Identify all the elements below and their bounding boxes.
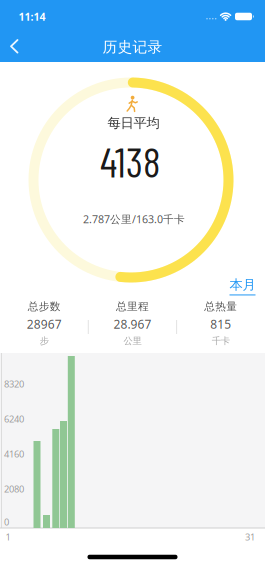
staticText: 6240 bbox=[4, 413, 24, 425]
staticText: 每日平均 bbox=[107, 115, 159, 131]
staticText: 31 bbox=[245, 531, 255, 543]
staticText: 4160 bbox=[4, 448, 24, 460]
button[interactable]: Back bbox=[2, 34, 26, 58]
staticText: 28967 bbox=[27, 316, 62, 332]
staticText: 28.967 bbox=[113, 316, 151, 332]
staticText: 本月 bbox=[229, 277, 255, 293]
staticText: 8320 bbox=[4, 378, 24, 390]
staticText: 0 bbox=[4, 516, 9, 528]
staticText: 总步数 bbox=[28, 300, 61, 313]
staticText: 11:14 bbox=[18, 9, 45, 24]
staticText: 1 bbox=[5, 531, 10, 543]
staticText: 千卡 bbox=[212, 335, 230, 346]
staticText: 2080 bbox=[4, 483, 24, 495]
staticText: 4138 bbox=[100, 136, 160, 186]
staticText: 2.787公里/163.0千卡 bbox=[83, 212, 185, 226]
staticText: 历史记录 bbox=[102, 38, 162, 56]
staticText: 公里 bbox=[123, 335, 141, 346]
staticText: 总热量 bbox=[204, 300, 237, 313]
staticText: 步 bbox=[40, 335, 49, 346]
button[interactable]: 本月 bbox=[229, 277, 255, 295]
staticText: 815 bbox=[210, 316, 231, 332]
staticText: 总里程 bbox=[116, 300, 149, 313]
